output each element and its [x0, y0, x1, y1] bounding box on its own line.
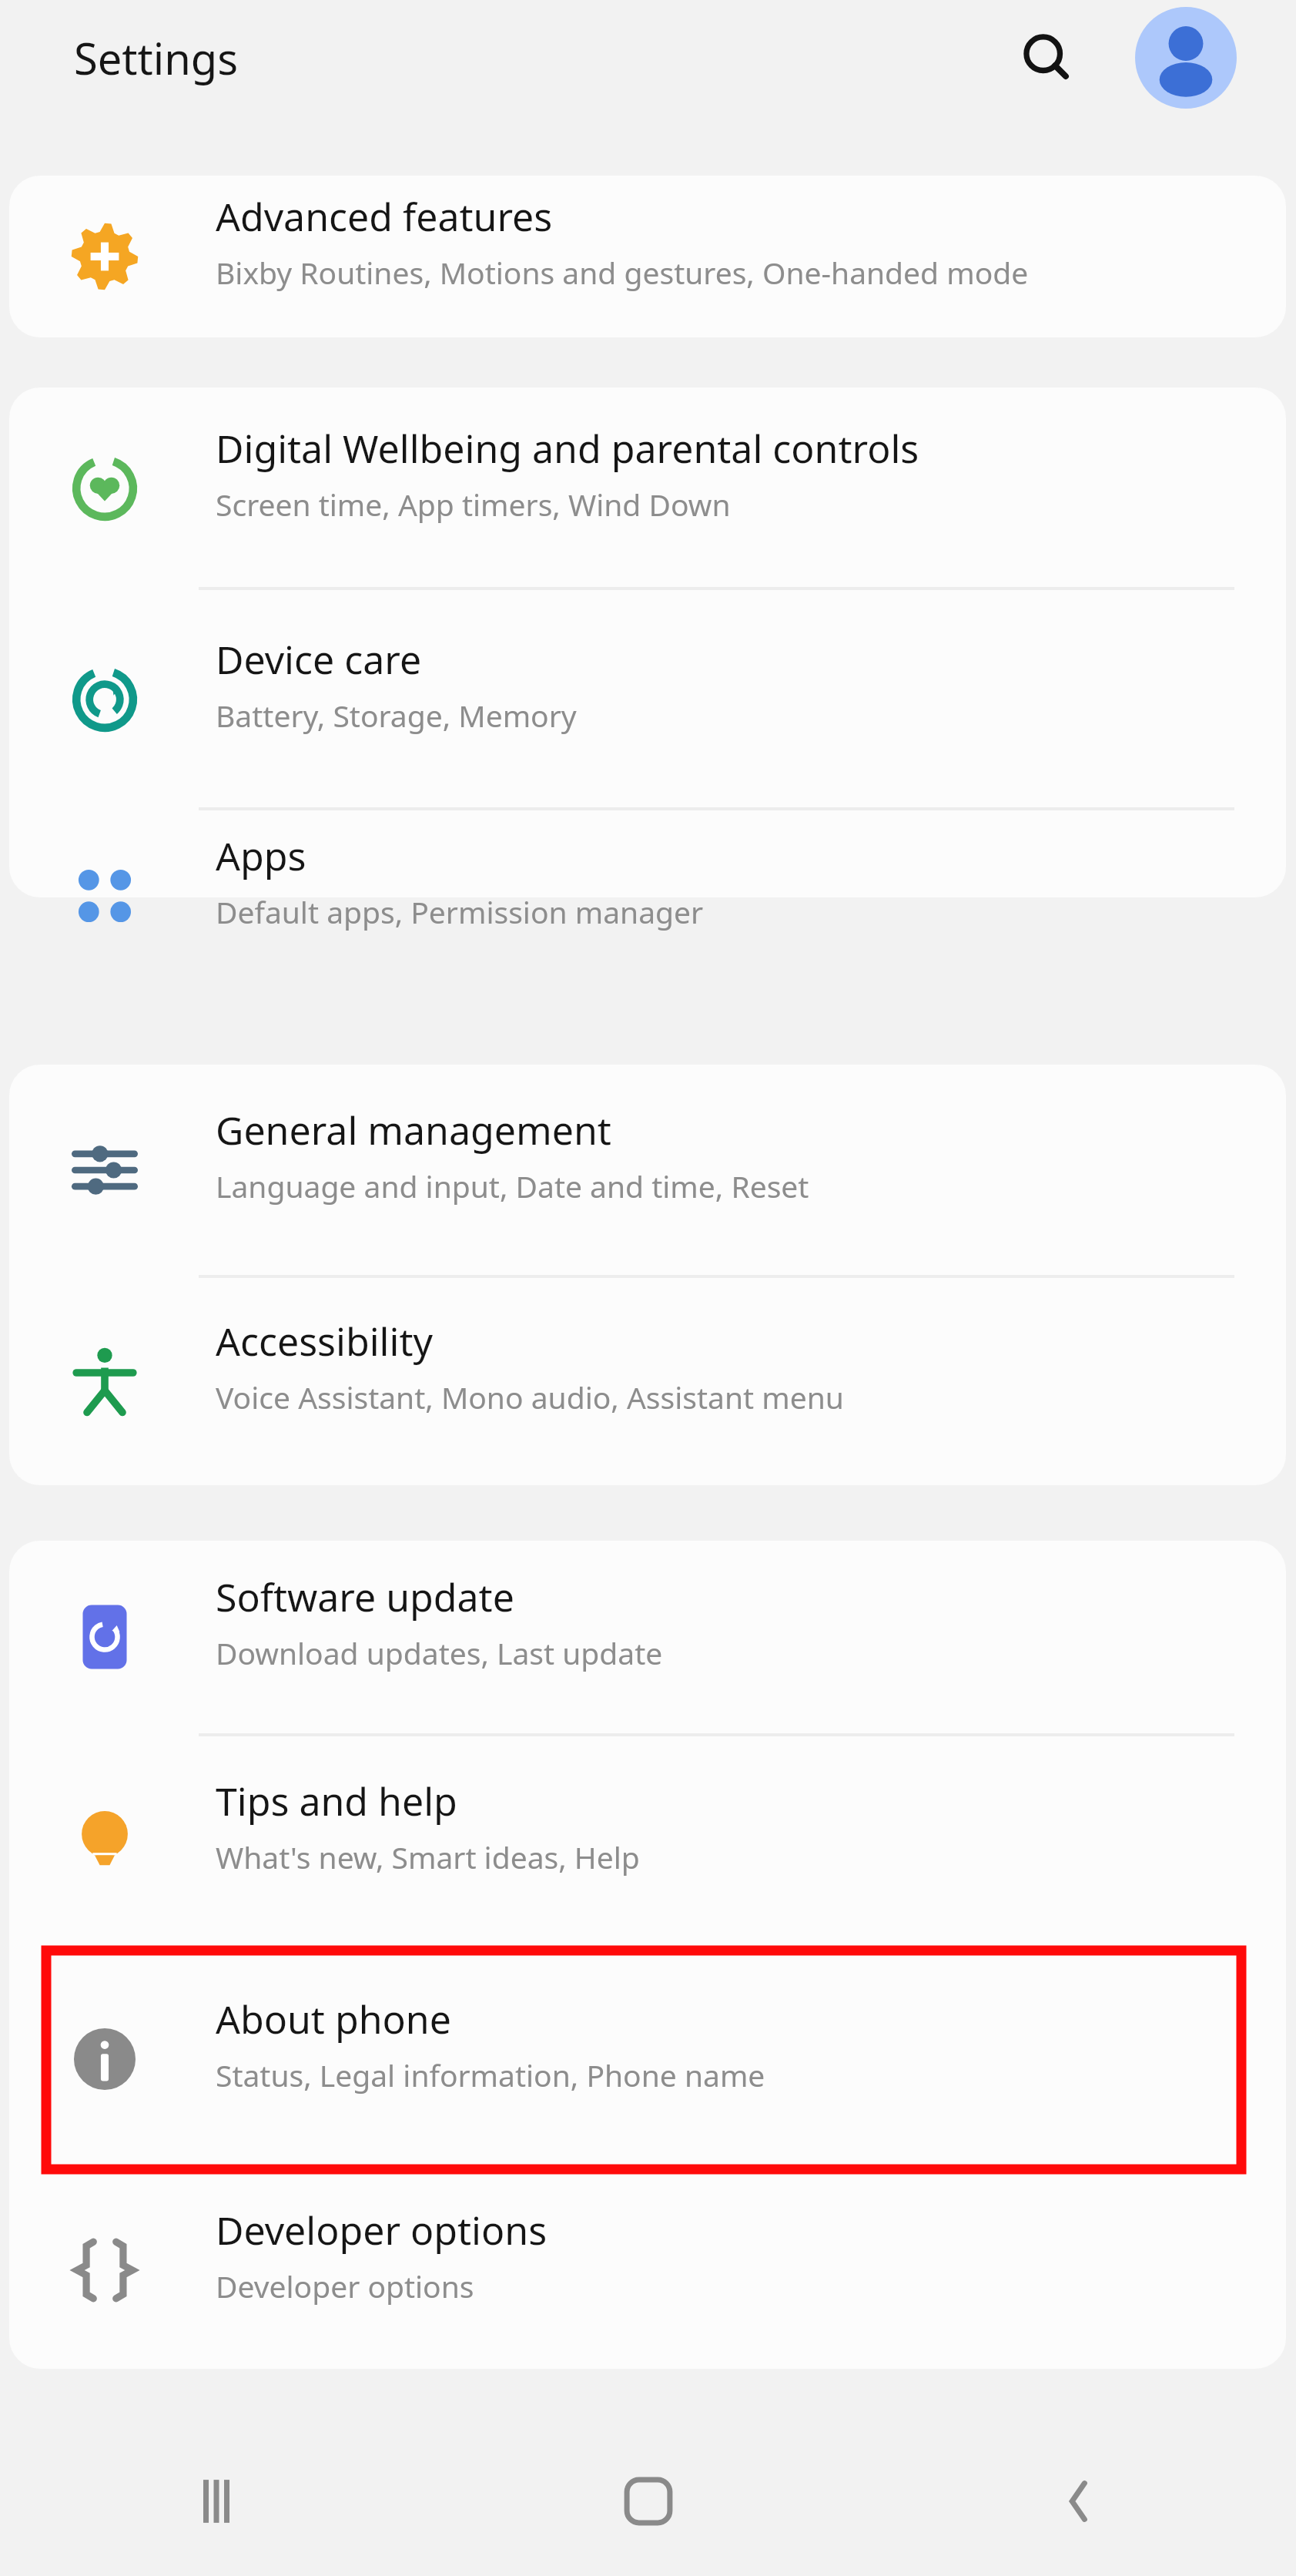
staticText: Software update — [216, 1571, 514, 1623]
staticText: About phone — [216, 1993, 451, 2045]
button[interactable] — [9, 1735, 1286, 1947]
button[interactable] — [9, 387, 1286, 589]
staticText: Battery, Storage, Memory — [216, 695, 577, 736]
button[interactable] — [9, 2171, 1286, 2369]
button[interactable]: Account — [1134, 5, 1238, 110]
button[interactable] — [9, 589, 1286, 809]
staticText: Digital Wellbeing and parental controls — [216, 422, 919, 475]
staticText: Accessibility — [216, 1315, 433, 1367]
staticText: Tips and help — [216, 1775, 457, 1827]
button[interactable] — [9, 1541, 1286, 1733]
button[interactable]: Search — [1001, 12, 1093, 104]
button[interactable]: Home — [432, 2427, 864, 2576]
staticText: Voice Assistant, Mono audio, Assistant m… — [216, 1377, 844, 1417]
button[interactable] — [9, 1276, 1286, 1485]
button[interactable]: Back — [864, 2427, 1296, 2576]
button[interactable] — [9, 1949, 1286, 2169]
staticText: What's new, Smart ideas, Help — [216, 1836, 640, 1877]
staticText: Developer options — [216, 2266, 474, 2306]
button[interactable] — [9, 809, 1286, 897]
staticText: Default apps, Permission manager — [216, 891, 704, 932]
staticText: Settings — [74, 29, 239, 87]
staticText: Device care — [216, 633, 422, 686]
staticText: Developer options — [216, 2204, 548, 2256]
staticText: General management — [216, 1104, 611, 1156]
staticText: Apps — [216, 830, 306, 882]
button[interactable] — [9, 1065, 1286, 1275]
button[interactable]: Recents — [0, 2427, 432, 2576]
staticText: Screen time, App timers, Wind Down — [216, 484, 731, 525]
staticText: Language and input, Date and time, Reset — [216, 1166, 809, 1206]
button[interactable] — [9, 176, 1286, 337]
staticText: Download updates, Last update — [216, 1632, 663, 1673]
staticText: Advanced features — [216, 190, 553, 243]
staticText: Status, Legal information, Phone name — [216, 2054, 765, 2095]
staticText: Bixby Routines, Motions and gestures, On… — [216, 252, 1029, 293]
